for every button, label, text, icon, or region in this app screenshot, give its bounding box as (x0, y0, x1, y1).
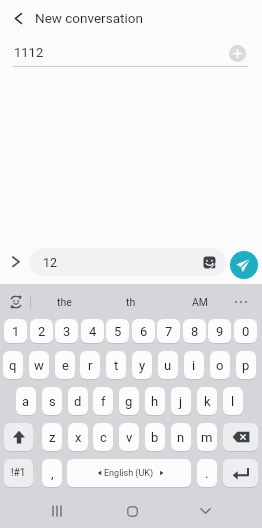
button[interactable]: m (197, 423, 217, 451)
staticText: r (88, 358, 93, 373)
staticText: p (242, 358, 250, 373)
staticText: 7 (165, 324, 173, 339)
staticText: y (139, 358, 146, 373)
button[interactable] (230, 251, 258, 279)
button[interactable]: c (93, 423, 113, 451)
staticText: th (126, 296, 136, 308)
staticText: 12 (43, 255, 58, 270)
button[interactable]: 2 (30, 319, 53, 343)
button[interactable]: o (210, 351, 230, 379)
button[interactable]: 12 (30, 248, 226, 276)
button[interactable]: u (158, 351, 178, 379)
button[interactable]: v (119, 423, 139, 451)
button[interactable]: 1 (4, 319, 27, 343)
staticText: q (9, 358, 17, 373)
staticText: 1112 (14, 45, 44, 60)
button[interactable] (188, 497, 222, 525)
button[interactable] (223, 459, 258, 487)
button[interactable] (40, 497, 74, 525)
button[interactable]: i (184, 351, 204, 379)
staticText: a (22, 394, 30, 409)
button[interactable] (6, 252, 26, 272)
button[interactable]: q (3, 351, 23, 379)
button[interactable]: th (105, 293, 157, 311)
button[interactable]: , (42, 459, 62, 487)
staticText: j (179, 394, 183, 409)
button[interactable] (9, 295, 23, 309)
button[interactable] (223, 423, 258, 451)
button[interactable]: f (93, 387, 113, 415)
staticText: , (51, 466, 54, 481)
staticText: c (100, 430, 107, 445)
staticText: 5 (114, 324, 122, 339)
button[interactable]: AM (174, 293, 226, 311)
staticText: AM (192, 296, 209, 308)
button[interactable]: h (145, 387, 165, 415)
button[interactable]: 0 (234, 319, 257, 343)
staticText: m (201, 430, 213, 445)
staticText: 6 (140, 324, 148, 339)
staticText: f (101, 394, 106, 409)
button[interactable] (231, 293, 251, 311)
button[interactable]: !#1 (4, 459, 33, 487)
button[interactable]: the (38, 293, 90, 311)
staticText: 1 (12, 324, 20, 339)
button[interactable]: 9 (208, 319, 231, 343)
button[interactable]: g (119, 387, 139, 415)
staticText: v (126, 430, 133, 445)
button[interactable]: n (171, 423, 191, 451)
staticText: e (62, 358, 69, 373)
staticText: o (216, 358, 224, 373)
button[interactable] (8, 8, 30, 30)
button[interactable]: 4 (81, 319, 104, 343)
button[interactable]: y (132, 351, 152, 379)
staticText: h (151, 394, 159, 409)
button[interactable]: 6 (132, 319, 155, 343)
staticText: 3 (63, 324, 71, 339)
button[interactable]: j (171, 387, 191, 415)
staticText: s (49, 394, 56, 409)
staticText: t (114, 358, 119, 373)
button[interactable]: d (68, 387, 88, 415)
staticText: z (49, 430, 56, 445)
staticText: g (125, 394, 133, 409)
staticText: . (205, 466, 209, 481)
button[interactable]: a (16, 387, 36, 415)
staticText: the (57, 296, 72, 308)
staticText: n (177, 430, 185, 445)
staticText: x (75, 430, 82, 445)
button[interactable] (229, 45, 246, 62)
staticText: New conversation (35, 10, 143, 26)
button[interactable]: 7 (157, 319, 180, 343)
button[interactable] (4, 423, 33, 451)
button[interactable]: 5 (106, 319, 129, 343)
staticText: 0 (242, 324, 250, 339)
button[interactable]: t (106, 351, 126, 379)
button[interactable]: English (UK) (67, 459, 191, 487)
staticText: !#1 (11, 467, 26, 479)
staticText: w (34, 358, 44, 373)
staticText: u (164, 358, 172, 373)
button[interactable]: l (223, 387, 243, 415)
button[interactable]: 3 (55, 319, 78, 343)
staticText: k (204, 394, 211, 409)
staticText: l (231, 394, 235, 409)
button[interactable]: . (197, 459, 217, 487)
button[interactable]: s (42, 387, 62, 415)
button[interactable]: w (29, 351, 49, 379)
staticText: English (UK) (104, 468, 154, 479)
staticText: 9 (216, 324, 224, 339)
staticText: i (192, 358, 196, 373)
button[interactable]: r (80, 351, 100, 379)
button[interactable]: 8 (183, 319, 206, 343)
button[interactable]: z (42, 423, 62, 451)
button[interactable] (115, 497, 149, 525)
button[interactable]: p (236, 351, 256, 379)
button[interactable]: x (68, 423, 88, 451)
staticText: 4 (89, 324, 97, 339)
button[interactable]: k (197, 387, 217, 415)
staticText: b (151, 430, 159, 445)
staticText: 8 (191, 324, 199, 339)
button[interactable]: e (55, 351, 75, 379)
button[interactable]: b (145, 423, 165, 451)
